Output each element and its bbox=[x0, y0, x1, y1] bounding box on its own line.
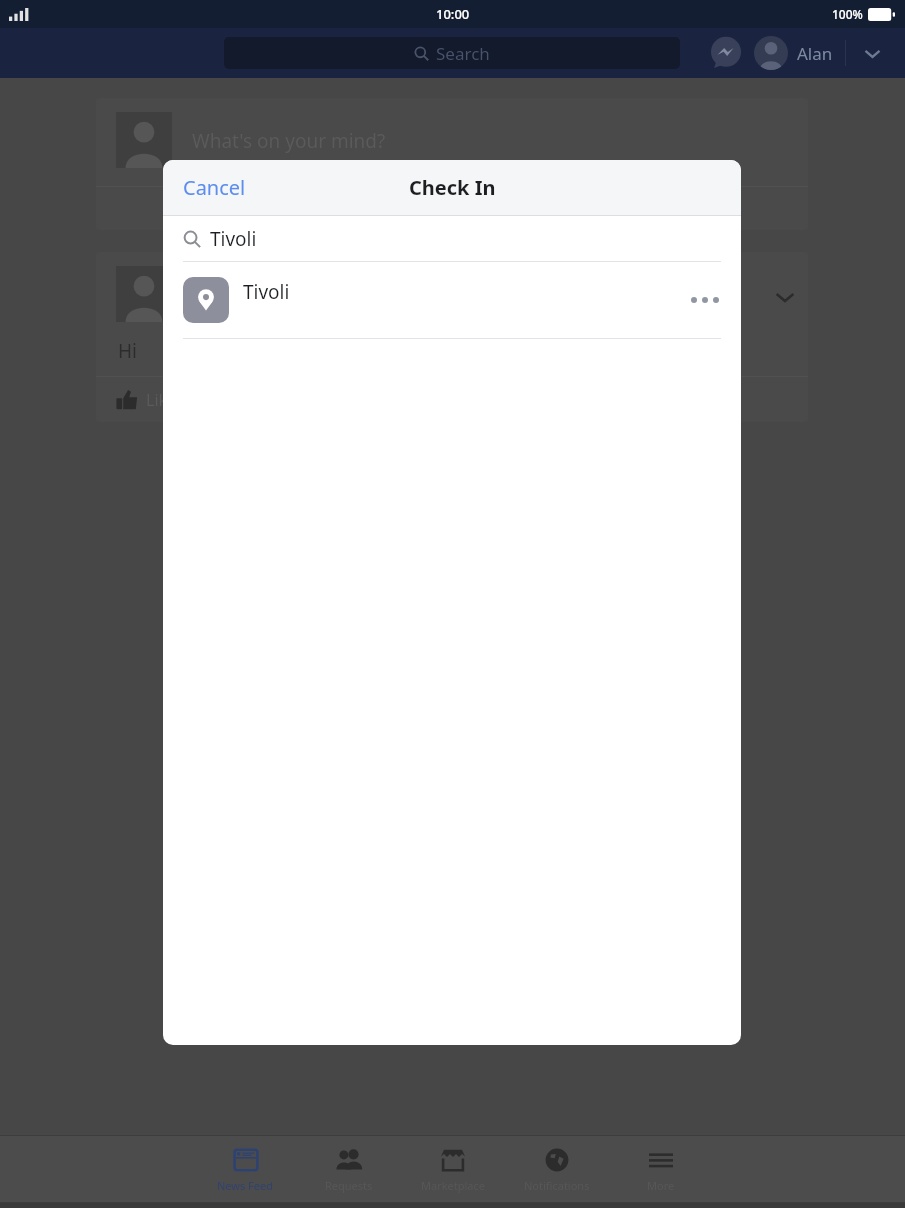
staticText: Search bbox=[436, 42, 490, 65]
staticText: Hi bbox=[118, 338, 137, 364]
button[interactable]: More bbox=[609, 1136, 713, 1202]
staticText: Tivoli bbox=[210, 226, 257, 252]
staticText: Cancel bbox=[183, 174, 246, 201]
staticText: More bbox=[647, 1178, 675, 1193]
staticText: News Feed bbox=[217, 1178, 274, 1193]
button[interactable]: News Feed bbox=[193, 1136, 297, 1202]
button[interactable]: Cancel bbox=[163, 160, 266, 215]
button[interactable]: Notifications bbox=[505, 1136, 609, 1202]
staticText: Tivoli bbox=[243, 279, 290, 305]
button[interactable]: Account menu bbox=[852, 33, 892, 73]
button[interactable]: Marketplace bbox=[401, 1136, 505, 1202]
button[interactable]: Search bbox=[224, 37, 680, 69]
button[interactable]: Alan bbox=[754, 32, 833, 74]
staticText: Requests bbox=[325, 1178, 373, 1193]
staticText: Notifications bbox=[524, 1178, 590, 1193]
staticText: 10:00 bbox=[436, 5, 470, 23]
staticText: Alan bbox=[797, 42, 833, 65]
button[interactable]: More options for Tivoli bbox=[681, 276, 729, 324]
button[interactable]: Tivoli bbox=[163, 262, 741, 338]
staticText: What's on your mind? bbox=[192, 128, 386, 154]
staticText: Like bbox=[146, 389, 177, 411]
button[interactable]: Messenger bbox=[708, 35, 744, 71]
button[interactable]: Requests bbox=[297, 1136, 401, 1202]
staticText: 100% bbox=[832, 6, 863, 22]
staticText: Check In bbox=[409, 174, 496, 201]
